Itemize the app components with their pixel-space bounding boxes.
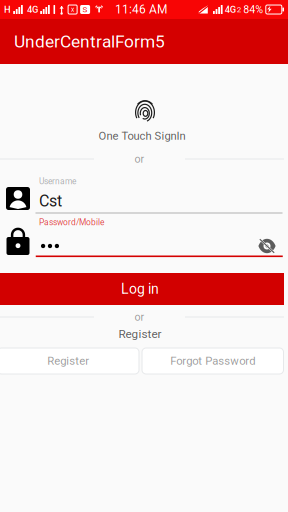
staticText: Username — [39, 177, 76, 186]
staticText: 2 — [237, 5, 241, 14]
staticText: 4G — [27, 4, 38, 15]
staticText: 4G — [225, 4, 236, 15]
staticText: x — [71, 6, 74, 13]
staticText: Register — [118, 327, 161, 341]
staticText: Log in — [121, 281, 159, 297]
button[interactable]: One Touch SignIn — [0, 130, 286, 142]
staticText: Password/Mobile — [39, 218, 104, 227]
button[interactable]: Forgot Password — [142, 348, 283, 374]
button[interactable]: Register — [0, 348, 139, 374]
staticText: 84% — [243, 3, 263, 16]
staticText: 11:46 AM — [115, 2, 167, 17]
staticText: Forgot Password — [170, 354, 255, 368]
staticText: One Touch SignIn — [98, 129, 185, 142]
staticText: UnderCentralForm5 — [14, 31, 165, 52]
staticText: Cst — [39, 192, 62, 210]
staticText: or — [134, 153, 144, 165]
staticText: S — [83, 5, 88, 14]
button[interactable]: Log in — [0, 273, 284, 305]
button[interactable]: Register — [0, 327, 284, 341]
button[interactable]: Hide password — [252, 233, 282, 259]
staticText: H — [4, 4, 11, 15]
staticText: Register — [47, 354, 89, 368]
staticText: or — [134, 311, 144, 323]
